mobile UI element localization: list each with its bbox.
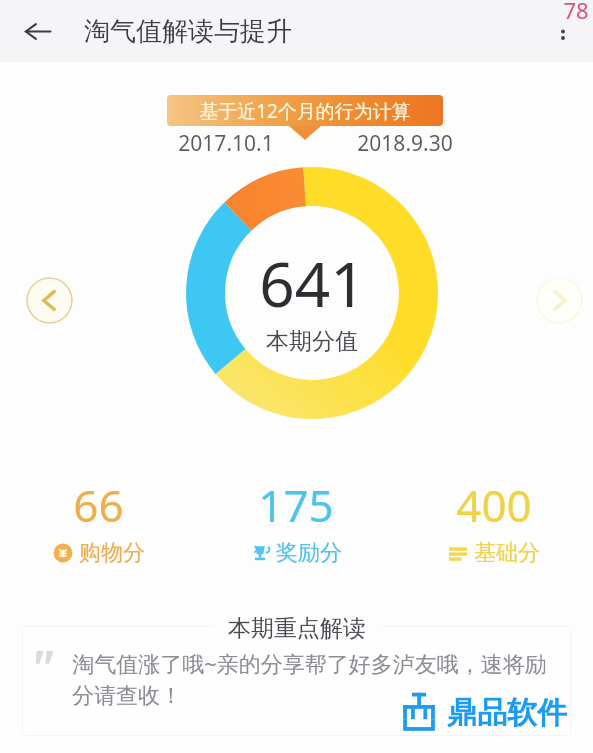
button[interactable]: 淘气值涨了哦~亲的分享帮了好多泸友哦，速将励 — [22, 626, 571, 736]
staticText: 奖励分 — [276, 539, 342, 567]
staticText: 本期分值 — [266, 327, 358, 356]
staticText: 淘气值解读与提升 — [84, 15, 292, 48]
staticText: 641 — [259, 241, 366, 325]
staticText: 2017.10.1 — [178, 129, 274, 158]
button[interactable]: 66 — [0, 475, 197, 567]
button[interactable]: 175 — [197, 475, 395, 567]
button[interactable]: Next period — [536, 277, 583, 324]
staticText: 基于近12个月的行为计算 — [199, 98, 411, 124]
staticText: 本期重点解读 — [228, 614, 366, 643]
staticText: 66 — [73, 475, 124, 535]
staticText: 400 — [456, 475, 532, 535]
staticText: 78 — [563, 0, 589, 25]
staticText: 淘气值涨了哦~亲的分享帮了好多泸友哦，速将励 — [72, 648, 547, 678]
button[interactable]: Back — [14, 8, 60, 54]
button[interactable]: Previous period — [26, 277, 73, 324]
staticText: 购物分 — [79, 539, 145, 567]
staticText: 基础分 — [474, 539, 540, 567]
staticText: 175 — [258, 475, 334, 535]
button[interactable]: 400 — [395, 475, 593, 567]
staticText: 分请查收！ — [72, 682, 182, 710]
staticText: 鼎品软件 — [447, 694, 567, 732]
button[interactable]: More options — [541, 13, 585, 57]
staticText: 2018.9.30 — [357, 129, 453, 158]
